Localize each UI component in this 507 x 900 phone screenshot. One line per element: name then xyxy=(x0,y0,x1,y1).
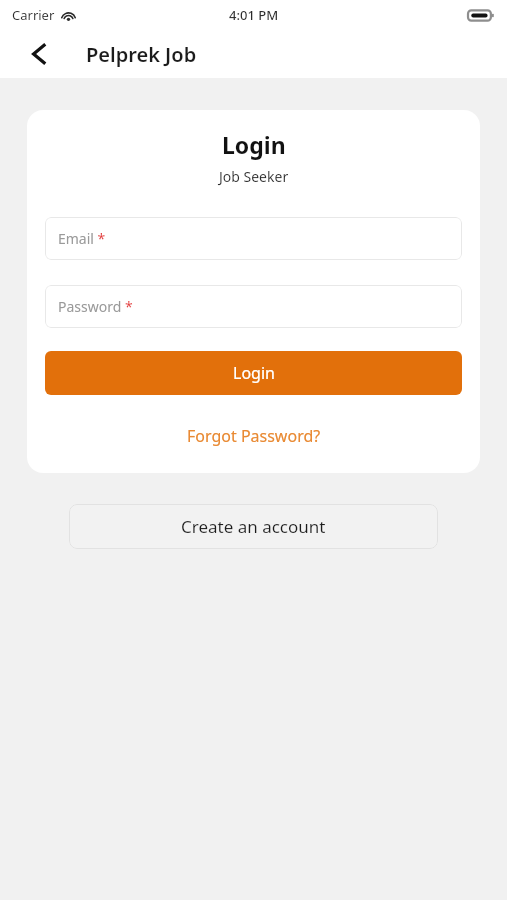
button[interactable]: Password * xyxy=(45,285,462,328)
staticText: 4:01 PM xyxy=(229,6,279,24)
staticText: Email * xyxy=(58,229,106,248)
staticText: Job Seeker xyxy=(219,167,289,186)
staticText: Password * xyxy=(58,297,133,316)
staticText: Login xyxy=(222,129,286,160)
button[interactable]: Back xyxy=(16,31,62,77)
button[interactable]: Create an account xyxy=(69,504,438,549)
button[interactable]: Login xyxy=(45,351,462,395)
button[interactable]: Email * xyxy=(45,217,462,260)
button[interactable]: Forgot Password? xyxy=(177,421,331,451)
staticText: Pelprek Job xyxy=(86,41,197,68)
staticText: Login xyxy=(233,362,275,384)
staticText: Forgot Password? xyxy=(187,425,321,447)
staticText: Create an account xyxy=(181,515,326,538)
staticText: Carrier xyxy=(12,6,55,24)
